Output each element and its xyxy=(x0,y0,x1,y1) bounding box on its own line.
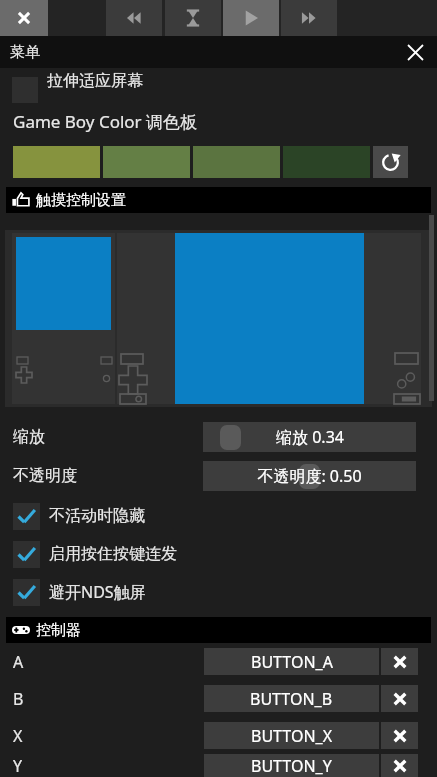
button[interactable]: 不活动时隐藏 xyxy=(0,500,437,532)
button[interactable]: 避开NDS触屏 xyxy=(0,576,437,608)
staticText: B xyxy=(13,688,24,710)
staticText: BUTTON_X xyxy=(251,725,333,747)
button[interactable] xyxy=(5,230,432,407)
staticText: Y xyxy=(13,755,23,777)
staticText: 不透明度 xyxy=(13,466,77,486)
button[interactable]: Clear X mapping xyxy=(381,722,418,749)
button[interactable]: Clear B mapping xyxy=(381,685,418,712)
staticText: BUTTON_A xyxy=(251,651,333,673)
button[interactable]: Reset palette xyxy=(373,146,408,178)
button[interactable]: Close xyxy=(0,0,48,36)
button[interactable]: 控制器 xyxy=(6,617,431,643)
staticText: 不透明度: 0.50 xyxy=(257,465,362,487)
staticText: A xyxy=(13,651,24,673)
staticText: 缩放 xyxy=(13,427,45,447)
staticText: X xyxy=(13,725,23,747)
button[interactable]: Fast forward xyxy=(281,0,337,36)
button[interactable]: BUTTON_X xyxy=(204,722,379,749)
staticText: BUTTON_B xyxy=(250,688,333,710)
button[interactable]: BUTTON_B xyxy=(204,685,379,712)
button[interactable]: BUTTON_A xyxy=(204,648,379,675)
staticText: Game Boy Color 调色板 xyxy=(13,110,198,133)
button[interactable]: Play xyxy=(223,0,279,36)
button[interactable]: 缩放 0.34 xyxy=(203,422,416,452)
button[interactable]: Slow motion xyxy=(165,0,221,36)
staticText: 控制器 xyxy=(36,621,81,640)
staticText: 不活动时隐藏 xyxy=(49,506,145,526)
staticText: 菜单 xyxy=(10,43,40,62)
button[interactable]: Clear A mapping xyxy=(381,648,418,675)
button[interactable]: Close menu xyxy=(401,38,429,66)
button[interactable]: 不透明度: 0.50 xyxy=(203,461,416,491)
staticText: 缩放 0.34 xyxy=(276,426,344,448)
button[interactable]: BUTTON_Y xyxy=(204,754,379,777)
button[interactable]: 触摸控制设置 xyxy=(6,187,431,213)
staticText: 触摸控制设置 xyxy=(36,191,126,210)
staticText: 拉伸适应屏幕 xyxy=(47,71,143,91)
button[interactable]: 拉伸适应屏幕 xyxy=(0,68,437,94)
button[interactable]: 启用按住按键连发 xyxy=(0,538,437,570)
staticText: 启用按住按键连发 xyxy=(49,544,177,564)
button[interactable]: Rewind xyxy=(106,0,162,36)
button[interactable]: Clear Y mapping xyxy=(381,754,418,777)
staticText: 避开NDS触屏 xyxy=(49,581,146,603)
staticText: BUTTON_Y xyxy=(251,755,332,777)
